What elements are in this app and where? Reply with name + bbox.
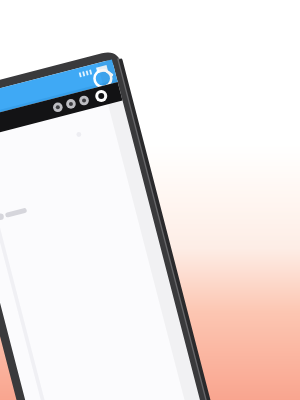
button[interactable]: Tablet device showing app screen <box>0 0 300 400</box>
